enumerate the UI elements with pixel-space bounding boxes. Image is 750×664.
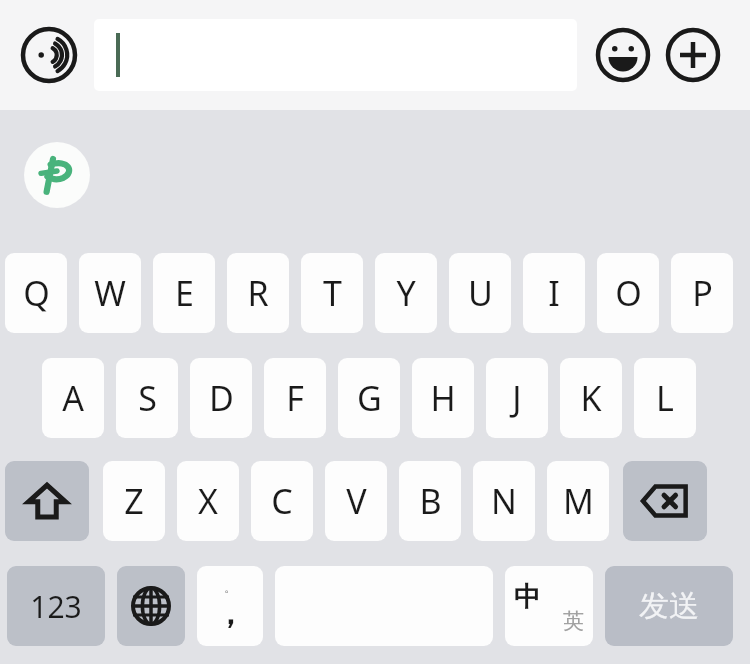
staticText: N <box>491 478 517 524</box>
button[interactable]: 123 <box>7 566 105 646</box>
staticText: M <box>563 478 594 524</box>
staticText: R <box>247 270 269 316</box>
button[interactable]: J <box>486 358 548 438</box>
staticText: C <box>271 478 293 524</box>
staticText: L <box>656 375 674 421</box>
button[interactable]: P <box>671 253 733 333</box>
button[interactable]: F <box>264 358 326 438</box>
button[interactable]: Shift <box>5 461 89 541</box>
staticText: S <box>138 375 157 421</box>
button[interactable] <box>94 19 577 91</box>
button[interactable]: C <box>251 461 313 541</box>
button[interactable]: More <box>662 24 724 86</box>
button[interactable]: E <box>153 253 215 333</box>
staticText: U <box>468 270 493 316</box>
button[interactable]: D <box>190 358 252 438</box>
staticText: Z <box>124 478 144 524</box>
staticText: K <box>580 375 602 421</box>
button[interactable]: O <box>597 253 659 333</box>
button[interactable]: Input method logo <box>24 142 90 208</box>
button[interactable]: Chinese English toggle <box>505 566 593 646</box>
button[interactable]: Switch language <box>117 566 185 646</box>
staticText: D <box>209 375 234 421</box>
staticText: A <box>62 375 84 421</box>
button[interactable]: I <box>523 253 585 333</box>
button[interactable]: Emoji <box>592 24 654 86</box>
button[interactable]: Z <box>103 461 165 541</box>
button[interactable]: R <box>227 253 289 333</box>
button[interactable]: 发送 <box>605 566 733 646</box>
button[interactable]: B <box>399 461 461 541</box>
staticText: J <box>512 375 522 421</box>
staticText: 中 <box>514 580 541 614</box>
button[interactable]: T <box>301 253 363 333</box>
staticText: G <box>357 375 382 421</box>
staticText: ， <box>215 595 245 633</box>
button[interactable]: U <box>449 253 511 333</box>
button[interactable]: W <box>79 253 141 333</box>
staticText: Y <box>396 270 416 316</box>
staticText: I <box>548 270 560 316</box>
staticText: F <box>286 375 304 421</box>
button[interactable]: A <box>42 358 104 438</box>
button[interactable]: N <box>473 461 535 541</box>
button[interactable]: K <box>560 358 622 438</box>
button[interactable]: V <box>325 461 387 541</box>
staticText: V <box>346 478 367 524</box>
staticText: 123 <box>30 586 82 627</box>
staticText: T <box>323 270 342 316</box>
staticText: E <box>175 270 194 316</box>
staticText: 英 <box>563 608 584 634</box>
button[interactable]: S <box>116 358 178 438</box>
button[interactable]: Backspace <box>623 461 707 541</box>
staticText: 发送 <box>639 587 699 625</box>
button[interactable]: X <box>177 461 239 541</box>
button[interactable]: Y <box>375 253 437 333</box>
staticText: W <box>94 270 126 316</box>
staticText: 。 <box>224 579 237 595</box>
button[interactable]: M <box>547 461 609 541</box>
staticText: X <box>198 478 218 524</box>
button[interactable]: Q <box>5 253 67 333</box>
staticText: O <box>615 270 642 316</box>
button[interactable]: Punctuation <box>197 566 263 646</box>
staticText: Q <box>23 270 50 316</box>
button[interactable]: Voice input <box>18 24 80 86</box>
staticText: B <box>419 478 442 524</box>
button[interactable]: G <box>338 358 400 438</box>
staticText: H <box>430 375 456 421</box>
button[interactable]: L <box>634 358 696 438</box>
staticText: P <box>692 270 713 316</box>
button[interactable]: H <box>412 358 474 438</box>
